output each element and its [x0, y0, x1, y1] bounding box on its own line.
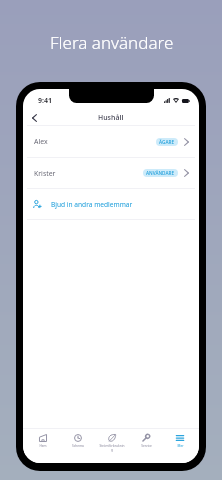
staticText: ÄGARE — [159, 139, 175, 145]
button[interactable]: Service — [129, 429, 163, 463]
button[interactable]: Schema — [60, 429, 95, 463]
button[interactable]: Krister — [23, 158, 199, 188]
staticText: Service — [141, 444, 152, 448]
staticText: Mer — [177, 444, 184, 448]
staticText: Alex — [34, 137, 48, 146]
staticText: Flera användare — [50, 31, 174, 54]
staticText: ANVÄNDARE — [146, 170, 175, 176]
staticText: Schema — [72, 444, 84, 448]
button[interactable]: Strömförbruknin g — [95, 429, 129, 463]
button[interactable]: Alex — [23, 126, 199, 157]
button[interactable]: Mer — [163, 429, 197, 463]
button[interactable]: Back — [27, 110, 42, 125]
staticText: Hem — [39, 444, 47, 448]
staticText: 9:41 — [38, 96, 52, 106]
staticText: Krister — [34, 169, 56, 178]
button[interactable]: Bjud in andra medlemmar — [23, 189, 199, 219]
staticText: Strömförbruknin g — [99, 444, 125, 452]
button[interactable]: Hem — [25, 429, 60, 463]
staticText: Bjud in andra medlemmar — [51, 200, 133, 209]
staticText: Hushåll — [98, 113, 124, 122]
